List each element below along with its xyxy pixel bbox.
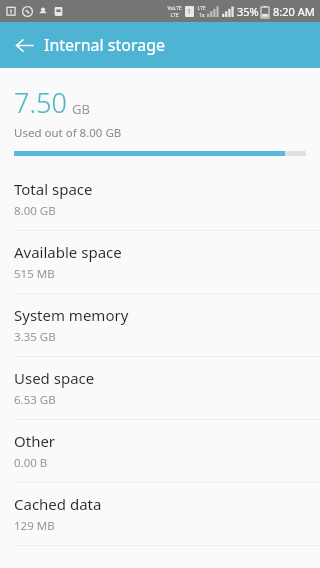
button[interactable]: Cached data (0, 483, 320, 545)
staticText: Available space (14, 242, 122, 262)
staticText: 8:20 AM (273, 4, 315, 19)
staticText: Cached data (14, 494, 102, 514)
staticText: LTE (197, 5, 206, 12)
staticText: 7.50 (14, 84, 67, 121)
staticText: 1 (187, 7, 192, 17)
staticText: 1x (199, 12, 205, 19)
button[interactable]: System memory (0, 294, 320, 356)
staticText: Total space (14, 179, 93, 199)
staticText: 8.00 GB (14, 203, 56, 219)
button[interactable]: Available space (0, 231, 320, 293)
staticText: LTE (170, 12, 179, 19)
staticText: 515 MB (14, 266, 55, 282)
staticText: Other (14, 431, 56, 451)
staticText: Internal storage (44, 34, 166, 56)
staticText: 3.35 GB (14, 329, 56, 345)
staticText: 35% (237, 4, 259, 19)
staticText: 0.00 B (14, 455, 48, 471)
staticText: Used space (14, 368, 95, 388)
staticText: GB (72, 100, 90, 118)
button[interactable]: Back (8, 29, 40, 61)
staticText: 129 MB (14, 518, 55, 534)
staticText: Used out of 8.00 GB (14, 125, 122, 141)
button[interactable]: Total space (0, 168, 320, 230)
button[interactable]: Other (0, 420, 320, 482)
staticText: 6.53 GB (14, 392, 56, 408)
button[interactable]: Used space (0, 357, 320, 419)
staticText: VoLTE (167, 5, 182, 12)
staticText: System memory (14, 305, 129, 325)
